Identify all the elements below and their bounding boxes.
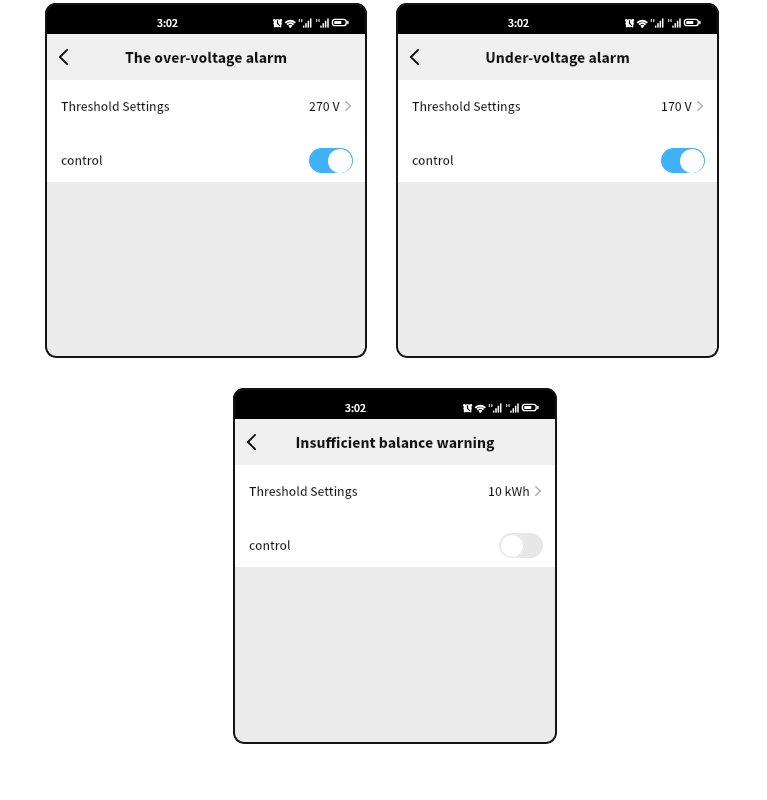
- staticText: Threshold Settings: [61, 97, 170, 115]
- staticText: control: [412, 151, 454, 169]
- button[interactable]: Threshold Settings: [396, 80, 719, 132]
- button[interactable]: Back: [46, 37, 80, 77]
- staticText: Under-voltage alarm: [485, 47, 630, 67]
- staticText: 3:02: [345, 400, 366, 415]
- staticText: control: [61, 151, 103, 169]
- button[interactable]: Toggle control: [499, 533, 543, 558]
- button[interactable]: Toggle control: [661, 148, 705, 173]
- staticText: 3:02: [508, 15, 529, 30]
- button[interactable]: control: [396, 134, 719, 186]
- staticText: Insufficient balance warning: [295, 432, 495, 452]
- staticText: 170 V: [661, 97, 692, 115]
- button[interactable]: Threshold Settings: [45, 80, 367, 132]
- staticText: 10 kWh: [488, 482, 530, 500]
- staticText: Threshold Settings: [412, 97, 521, 115]
- button[interactable]: Back: [234, 422, 268, 462]
- staticText: 3:02: [157, 15, 178, 30]
- staticText: Threshold Settings: [249, 482, 358, 500]
- button[interactable]: Threshold Settings: [233, 465, 557, 517]
- button[interactable]: Toggle control: [309, 148, 353, 173]
- staticText: The over-voltage alarm: [125, 47, 287, 67]
- staticText: 270 V: [309, 97, 340, 115]
- button[interactable]: control: [233, 519, 557, 571]
- button[interactable]: control: [45, 134, 367, 186]
- button[interactable]: Back: [397, 37, 431, 77]
- staticText: control: [249, 536, 291, 554]
